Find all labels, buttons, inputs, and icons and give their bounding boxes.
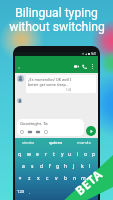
button[interactable]: quiero xyxy=(42,138,70,148)
staticText: j xyxy=(73,163,75,170)
staticText: m xyxy=(81,175,86,182)
staticText: d xyxy=(40,163,44,170)
button[interactable]: t xyxy=(50,148,58,160)
button[interactable]: Emoji xyxy=(20,130,24,134)
staticText: f xyxy=(49,163,51,170)
button[interactable]: i xyxy=(74,148,82,160)
staticText: g xyxy=(56,163,60,170)
button[interactable]: q xyxy=(15,148,24,160)
button[interactable]: l xyxy=(86,160,94,172)
button[interactable]: GIF xyxy=(28,130,32,134)
button[interactable]: h xyxy=(62,160,70,172)
button[interactable]: k xyxy=(78,160,86,172)
button[interactable]: y xyxy=(58,148,66,160)
staticText: u xyxy=(68,151,72,158)
button[interactable]: x xyxy=(34,172,43,184)
staticText: c xyxy=(46,175,49,182)
staticText: k xyxy=(81,163,84,170)
staticText: p xyxy=(92,151,96,158)
staticText: r xyxy=(45,151,48,158)
staticText: a xyxy=(22,163,25,170)
staticText: e xyxy=(36,151,39,158)
staticText: siento xyxy=(22,140,35,146)
button[interactable]: , xyxy=(27,184,33,200)
button[interactable]: Call xyxy=(82,64,87,69)
staticText: v xyxy=(55,175,58,182)
button[interactable]: n xyxy=(70,172,79,184)
button[interactable]: Enter xyxy=(86,184,98,200)
button[interactable]: Video call xyxy=(74,64,79,69)
staticText: w xyxy=(27,151,31,158)
button[interactable]: siento xyxy=(15,138,42,148)
staticText: , xyxy=(29,189,31,195)
button[interactable]: j xyxy=(70,160,78,172)
button[interactable]: m xyxy=(79,172,88,184)
button[interactable]: Space xyxy=(33,184,80,200)
staticText: Goodnight. Ta xyxy=(20,121,48,127)
staticText: i xyxy=(77,151,79,158)
button[interactable]: e xyxy=(33,148,42,160)
staticText: o xyxy=(84,151,88,158)
staticText: z xyxy=(28,175,31,182)
button[interactable]: w xyxy=(24,148,33,160)
button[interactable]: u xyxy=(66,148,74,160)
button[interactable]: Backspace xyxy=(88,172,98,184)
button[interactable]: Shift xyxy=(15,172,25,184)
staticText: without switching xyxy=(9,20,105,34)
button[interactable]: c xyxy=(43,172,52,184)
button[interactable]: mando xyxy=(70,138,98,148)
button[interactable]: Settings xyxy=(44,130,48,134)
button[interactable]: v xyxy=(52,172,61,184)
button[interactable]: p xyxy=(90,148,98,160)
button[interactable]: a xyxy=(19,160,28,172)
button[interactable]: g xyxy=(54,160,62,172)
staticText: h xyxy=(64,163,68,170)
button[interactable]: s xyxy=(28,160,37,172)
staticText: y xyxy=(61,151,64,158)
staticText: BETA xyxy=(72,166,105,198)
staticText: ¿Es martenillos! OK well I xyxy=(28,77,72,82)
button[interactable]: o xyxy=(82,148,90,160)
button[interactable]: 123 xyxy=(15,184,27,200)
staticText: better get some sleep... xyxy=(28,82,69,87)
staticText: 9:41 xyxy=(91,52,97,56)
staticText: t xyxy=(53,151,55,158)
button[interactable]: More options xyxy=(90,64,95,69)
staticText: x xyxy=(37,175,40,182)
staticText: . xyxy=(82,189,84,195)
button[interactable]: f xyxy=(46,160,54,172)
button[interactable]: Send xyxy=(86,126,96,136)
staticText: 1:46 xyxy=(66,88,72,92)
staticText: l xyxy=(89,163,91,170)
staticText: quiero xyxy=(49,140,63,146)
button[interactable]: Sticker xyxy=(36,130,40,134)
button[interactable]: z xyxy=(25,172,34,184)
staticText: n xyxy=(73,175,77,182)
staticText: b xyxy=(64,175,68,182)
button[interactable]: . xyxy=(80,184,86,200)
staticText: s xyxy=(31,163,34,170)
staticText: Bilingual typing xyxy=(15,6,98,20)
button[interactable]: d xyxy=(37,160,46,172)
button[interactable]: r xyxy=(42,148,50,160)
staticText: mando xyxy=(77,140,91,146)
staticText: 123 xyxy=(17,189,25,195)
staticText: q xyxy=(18,151,22,158)
button[interactable]: b xyxy=(61,172,70,184)
